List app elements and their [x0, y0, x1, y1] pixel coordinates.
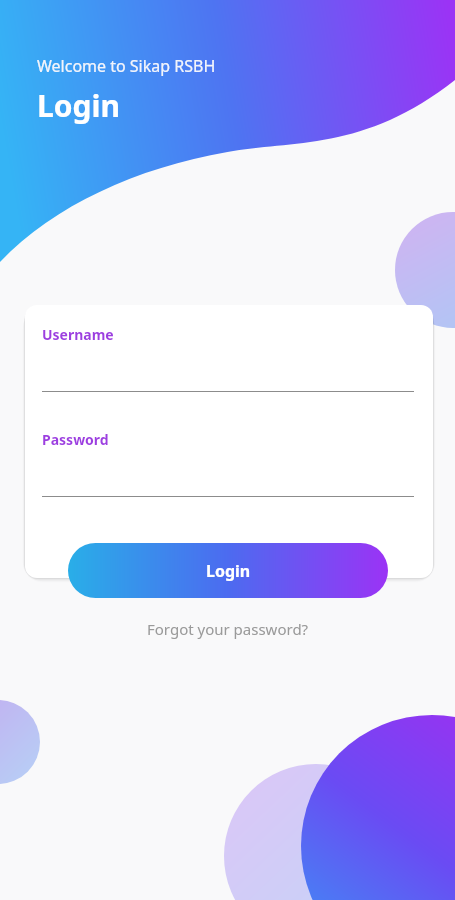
- button[interactable]: Login: [68, 543, 388, 598]
- staticText: Username: [42, 325, 114, 344]
- staticText: Login: [37, 85, 120, 126]
- button[interactable]: Password: [25, 430, 433, 497]
- button[interactable]: Username: [25, 325, 433, 392]
- button[interactable]: Forgot your password?: [0, 612, 455, 646]
- staticText: Password: [42, 430, 109, 449]
- staticText: Forgot your password?: [147, 619, 309, 639]
- staticText: Login: [206, 560, 251, 582]
- staticText: Welcome to Sikap RSBH: [37, 55, 216, 77]
